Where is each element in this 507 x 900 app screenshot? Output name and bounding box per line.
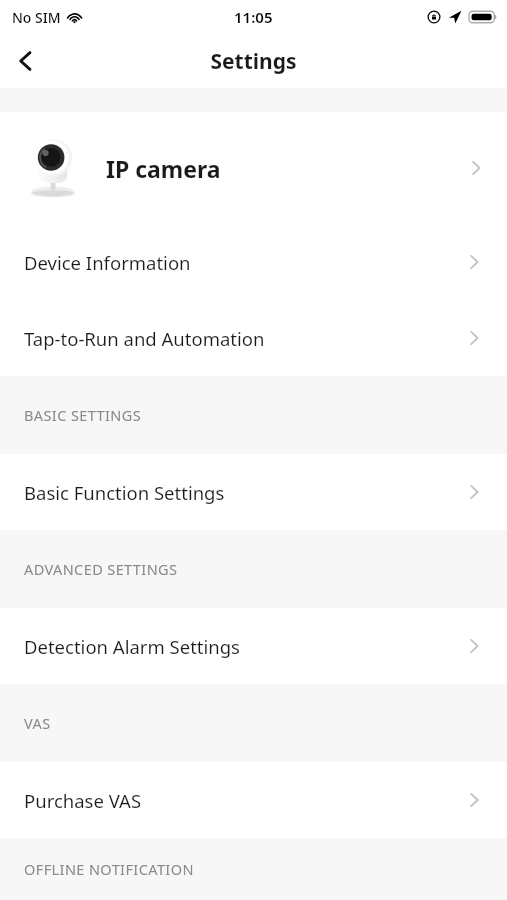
staticText: Purchase VAS (24, 788, 142, 813)
staticText: 11:05 (234, 7, 273, 27)
staticText: Basic Function Settings (24, 480, 225, 505)
button[interactable]: Device Information (0, 224, 507, 300)
button[interactable]: Purchase VAS (0, 762, 507, 838)
button[interactable]: Detection Alarm Settings (0, 608, 507, 684)
staticText: VAS (24, 713, 51, 733)
button[interactable]: IP camera (0, 112, 507, 224)
staticText: BASIC SETTINGS (24, 405, 141, 425)
staticText: Device Information (24, 250, 191, 275)
staticText: Tap-to-Run and Automation (24, 326, 265, 351)
button[interactable]: Tap-to-Run and Automation (0, 300, 507, 376)
staticText: IP camera (106, 153, 221, 184)
staticText: ADVANCED SETTINGS (24, 559, 178, 579)
button[interactable]: Basic Function Settings (0, 454, 507, 530)
button[interactable]: Back (0, 35, 52, 87)
staticText: Settings (210, 47, 297, 76)
staticText: OFFLINE NOTIFICATION (24, 859, 194, 879)
staticText: Detection Alarm Settings (24, 634, 240, 659)
staticText: No SIM (12, 8, 61, 27)
